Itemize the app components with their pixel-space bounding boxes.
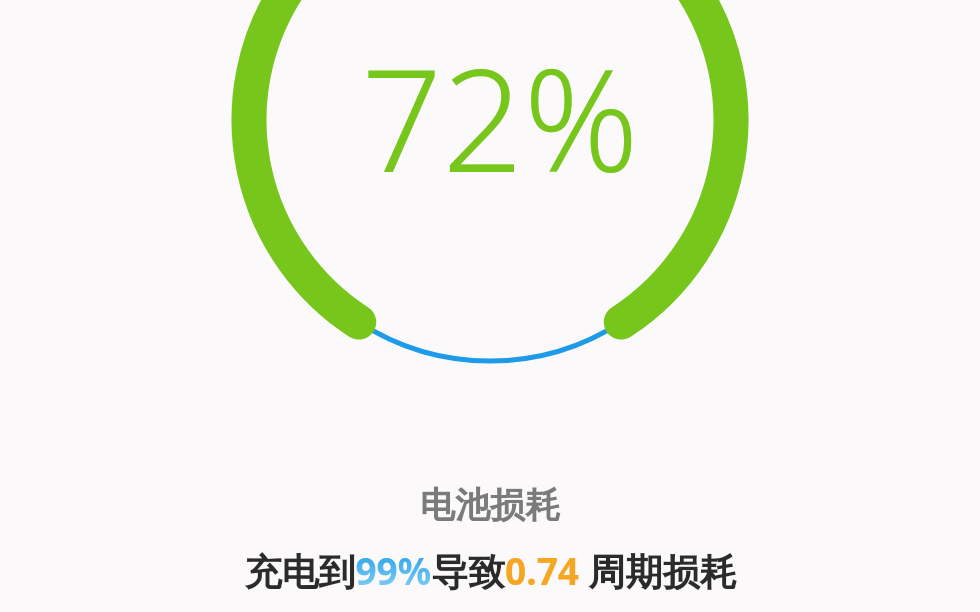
staticText: 电池损耗 (420, 483, 560, 527)
button[interactable]: Battery charge 72 percent (0, 0, 980, 612)
staticText: 72% (361, 20, 639, 213)
staticText: 充电到99%导致0.74 周期损耗 (244, 545, 737, 596)
